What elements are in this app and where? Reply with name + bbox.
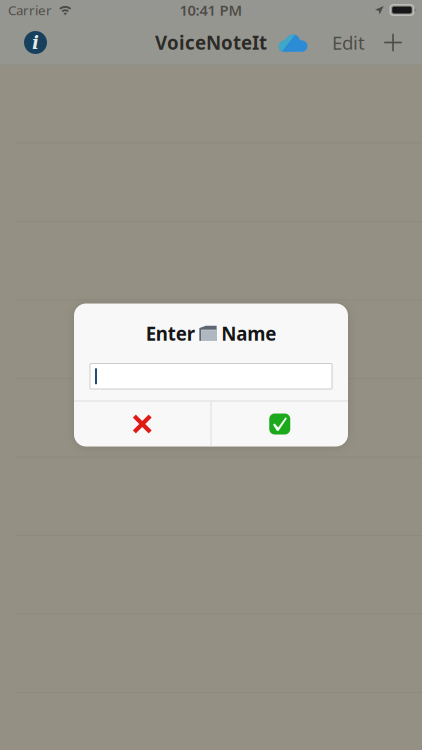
button[interactable]: Info: [0, 20, 61, 65]
staticText: 10:41 PM: [179, 0, 242, 20]
button[interactable]: Confirm: [211, 401, 348, 446]
button[interactable]: Cancel: [74, 401, 210, 446]
staticText: Edit: [332, 30, 365, 55]
staticText: Enter: [146, 321, 195, 346]
button[interactable]: Add: [376, 20, 422, 65]
button[interactable]: Edit: [321, 20, 376, 65]
staticText: Name: [221, 321, 276, 346]
staticText: i: [32, 32, 39, 53]
staticText: VoiceNoteIt: [155, 30, 267, 55]
staticText: Carrier: [8, 1, 52, 19]
